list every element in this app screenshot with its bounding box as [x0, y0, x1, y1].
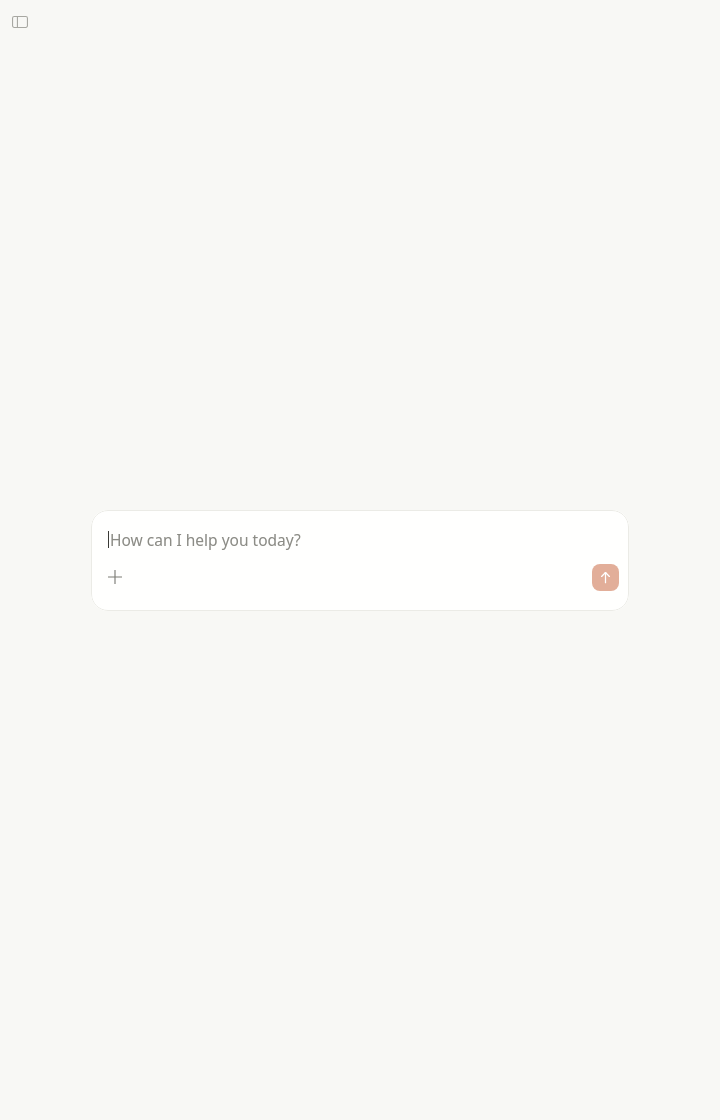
- button[interactable]: Add attachment: [98, 560, 132, 594]
- button[interactable]: Send message: [592, 564, 619, 591]
- button[interactable]: How can I help you today?: [91, 510, 629, 611]
- staticText: How can I help you today?: [110, 529, 301, 550]
- button[interactable]: Toggle sidebar: [4, 6, 36, 38]
